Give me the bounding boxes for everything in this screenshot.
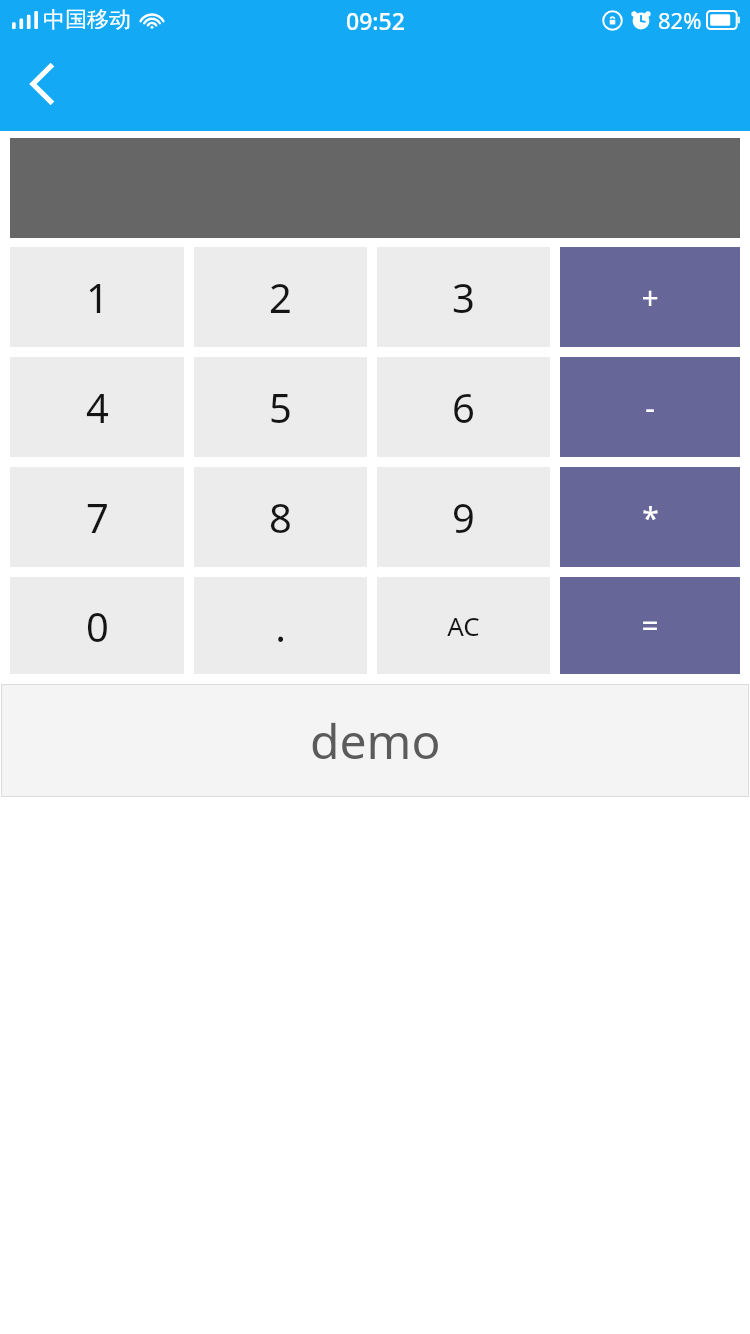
staticText: 中国移动 (43, 6, 131, 34)
staticText: 0 (86, 599, 109, 653)
staticText: + (641, 277, 659, 318)
button[interactable]: 7 (10, 467, 184, 567)
staticText: AC (447, 608, 480, 643)
button[interactable]: * (560, 467, 740, 567)
button[interactable]: 6 (377, 357, 550, 457)
staticText: 6 (452, 380, 475, 434)
button[interactable]: 0 (10, 577, 184, 674)
staticText: . (275, 599, 286, 653)
button[interactable]: demo (1, 684, 749, 797)
button[interactable]: 4 (10, 357, 184, 457)
button[interactable]: AC (377, 577, 550, 674)
staticText: 9 (452, 490, 475, 544)
staticText: 1 (86, 270, 109, 324)
staticText: 09:52 (346, 5, 405, 36)
button[interactable]: 1 (10, 247, 184, 347)
staticText: 3 (452, 270, 475, 324)
staticText: 8 (269, 490, 292, 544)
staticText: 82% (658, 5, 702, 35)
staticText: 7 (86, 490, 109, 544)
staticText: * (642, 497, 659, 538)
button[interactable]: - (560, 357, 740, 457)
button[interactable]: + (560, 247, 740, 347)
button[interactable]: 2 (194, 247, 367, 347)
button[interactable]: 3 (377, 247, 550, 347)
button[interactable]: Back (10, 52, 74, 116)
button[interactable]: 5 (194, 357, 367, 457)
staticText: 4 (86, 380, 109, 434)
button[interactable]: . (194, 577, 367, 674)
button[interactable]: 9 (377, 467, 550, 567)
button[interactable]: 8 (194, 467, 367, 567)
staticText: = (641, 605, 659, 646)
button[interactable]: = (560, 577, 740, 674)
staticText: demo (310, 708, 441, 773)
staticText: 5 (269, 380, 292, 434)
staticText: - (645, 387, 655, 428)
staticText: 2 (269, 270, 292, 324)
